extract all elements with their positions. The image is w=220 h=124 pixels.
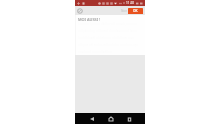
button[interactable]: Non: [121, 9, 128, 13]
staticText: MOI AUSSI !: [78, 17, 101, 22]
staticText: Non: [121, 9, 128, 13]
button[interactable]: OK: [128, 8, 143, 14]
button[interactable]: Recent apps: [125, 115, 133, 123]
button[interactable]: Close: [77, 8, 83, 14]
staticText: 11:20: [126, 1, 135, 5]
button[interactable]: Home: [107, 115, 115, 123]
button[interactable]: Back: [88, 115, 96, 123]
staticText: OK: [133, 9, 138, 13]
